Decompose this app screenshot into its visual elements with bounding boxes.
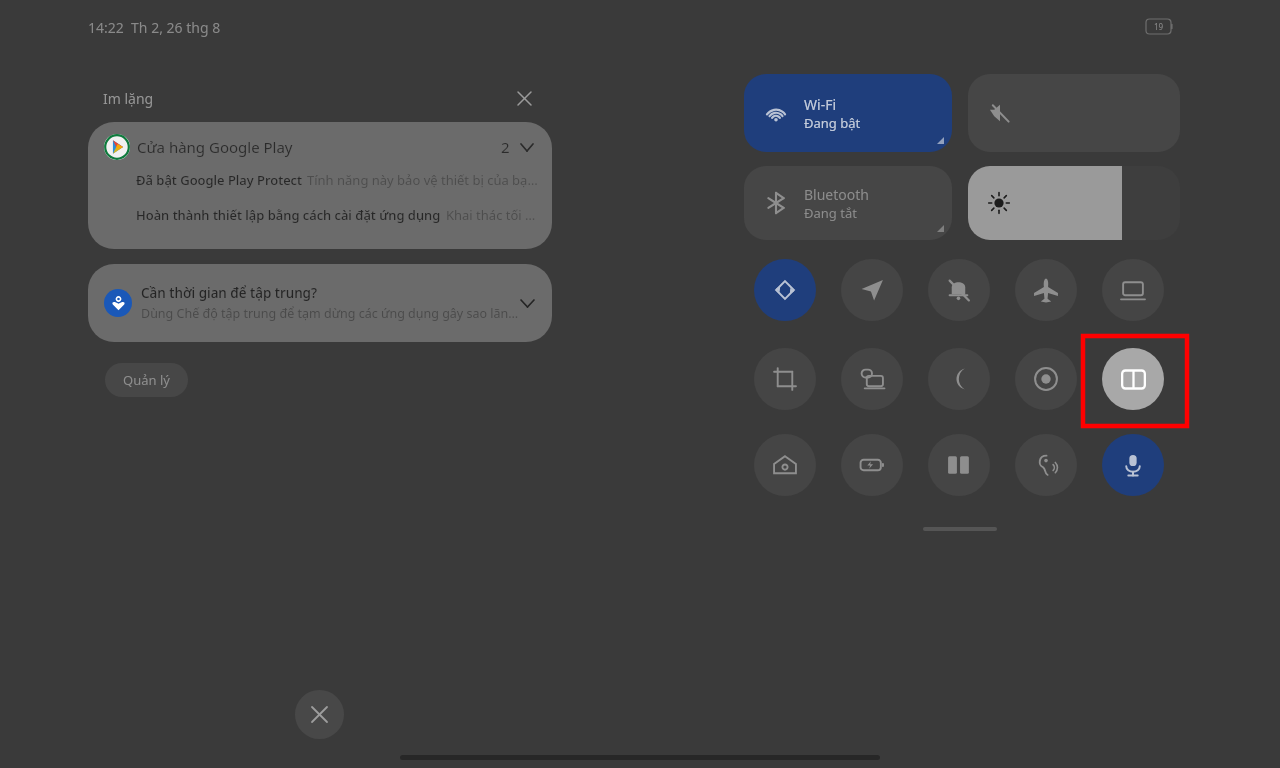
button[interactable]: Truyền màn hình xyxy=(1102,259,1164,321)
button[interactable]: Micrô xyxy=(1102,434,1164,496)
button[interactable]: Chế độ ban đêm xyxy=(928,348,990,410)
button[interactable]: Chế độ máy bay xyxy=(1015,259,1077,321)
button[interactable]: Chế độ im lặng xyxy=(968,74,1180,152)
button[interactable]: Bluetooth xyxy=(744,166,952,240)
button[interactable]: Xoá tất cả thông báo xyxy=(508,82,540,114)
button[interactable]: Thiết bị nhà xyxy=(754,434,816,496)
staticText: Dùng Chế độ tập trung để tạm dừng các ứn… xyxy=(141,305,519,322)
button[interactable]: Mở rộng xyxy=(516,136,538,158)
button[interactable]: Cửa hàng Google Play xyxy=(88,122,552,249)
button[interactable]: Tự động xoay xyxy=(754,259,816,321)
staticText: Đang tắt xyxy=(804,204,857,222)
button[interactable]: Chia đôi màn hình xyxy=(1102,348,1164,410)
staticText: 19 xyxy=(1154,21,1164,32)
button[interactable]: Ghi màn hình xyxy=(841,348,903,410)
button[interactable]: Vị trí xyxy=(841,259,903,321)
staticText: 2 xyxy=(501,137,510,157)
button[interactable]: Độ sáng xyxy=(968,166,1180,240)
staticText: Khai thác tối đa thi… xyxy=(446,206,538,224)
button[interactable]: Cần thời gian để tập trung? xyxy=(88,264,552,342)
button[interactable]: Mở rộng xyxy=(519,290,536,316)
staticText: Im lặng xyxy=(103,89,154,108)
button[interactable]: Wi-Fi xyxy=(744,74,952,152)
staticText: Cần thời gian để tập trung? xyxy=(141,284,318,302)
button[interactable]: Chế độ đọc xyxy=(928,434,990,496)
staticText: Cửa hàng Google Play xyxy=(137,137,293,157)
staticText: Quản lý xyxy=(123,371,170,389)
staticText: Đang bật xyxy=(804,114,861,132)
staticText: Wi-Fi xyxy=(804,95,837,114)
staticText: 14:22 Th 2, 26 thg 8 xyxy=(88,18,221,37)
button[interactable]: Không làm phiền xyxy=(928,259,990,321)
button[interactable]: Chụp ảnh màn hình xyxy=(754,348,816,410)
button[interactable]: Ghi xyxy=(1015,348,1077,410)
staticText: Tính năng này bảo vệ thiết bị của bạn kh… xyxy=(307,171,538,189)
button[interactable]: Quản lý xyxy=(105,363,188,397)
button[interactable]: Đóng xyxy=(295,690,344,739)
button[interactable]: Tiết kiệm pin xyxy=(841,434,903,496)
staticText: Bluetooth xyxy=(804,185,869,204)
button[interactable]: Trợ năng xyxy=(1015,434,1077,496)
staticText: Đã bật Google Play Protect xyxy=(136,171,302,189)
staticText: Hoàn thành thiết lập bằng cách cài đặt ứ… xyxy=(136,206,441,224)
